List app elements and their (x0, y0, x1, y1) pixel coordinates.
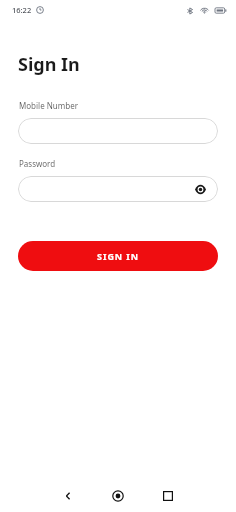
staticText: Sign In (18, 52, 80, 77)
button[interactable] (18, 118, 218, 144)
staticText: 16:22 (12, 5, 32, 15)
button[interactable]: Recent apps (143, 480, 193, 512)
button[interactable]: Show password (193, 182, 207, 196)
button[interactable]: Home (93, 480, 143, 512)
staticText: SIGN IN (97, 250, 139, 262)
staticText: Password (19, 158, 56, 169)
button[interactable]: Back (43, 480, 93, 512)
staticText: Mobile Number (19, 100, 78, 111)
button[interactable]: SIGN IN (18, 241, 218, 271)
button[interactable]: Show password (18, 176, 218, 202)
